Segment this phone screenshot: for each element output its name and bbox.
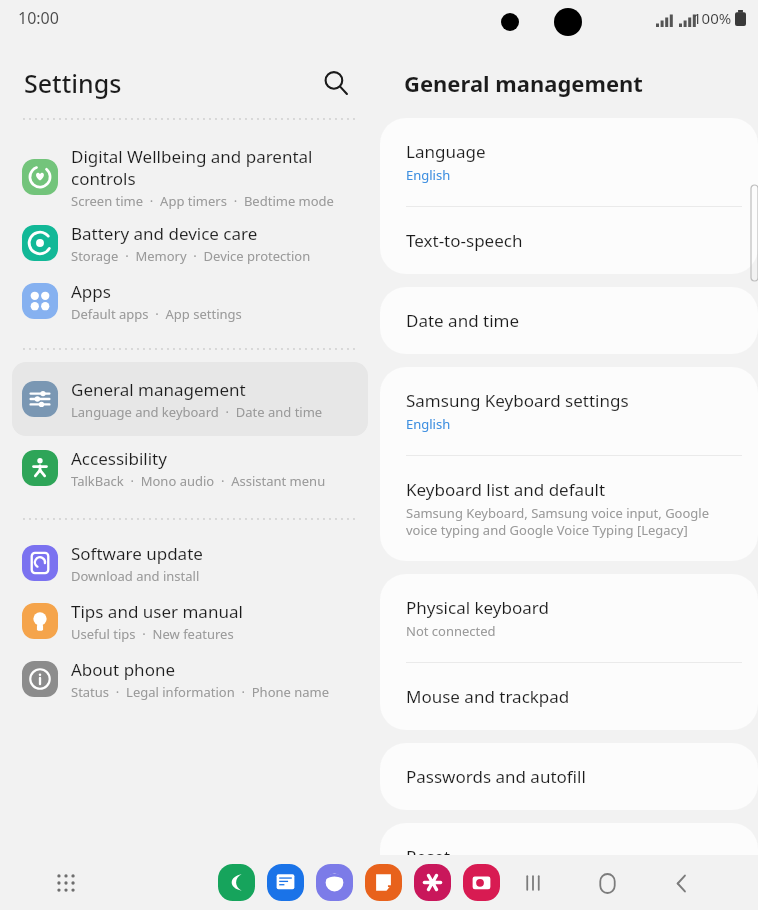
button[interactable]: Internet [316,864,353,901]
staticText: Physical keyboard [406,596,549,619]
button[interactable]: Digital Wellbeing and parental controls [0,140,380,214]
button[interactable]: Text-to-speech [380,207,758,274]
button[interactable]: All apps [46,863,86,903]
staticText: Not connected [406,622,496,640]
staticText: Tips and user manual [71,600,243,623]
staticText: Accessibility [71,447,167,470]
button[interactable]: Software update [0,534,380,592]
button[interactable]: General management [12,362,368,436]
button[interactable]: Battery and device care [0,214,380,272]
staticText: Screen time · App timers · Bedtime mode [71,192,334,210]
button[interactable]: Physical keyboard [380,574,758,662]
button[interactable]: About phone [0,650,380,708]
button[interactable]: Search [314,61,358,105]
staticText: English [406,166,451,184]
button[interactable]: Camera [463,864,500,901]
staticText: Storage · Memory · Device protection [71,247,311,265]
staticText: Software update [71,542,203,565]
staticText: Default apps · App settings [71,305,242,323]
button[interactable]: Tips and user manual [0,592,380,650]
staticText: 100% [693,8,732,28]
staticText: Mouse and trackpad [406,685,570,708]
staticText: Digital Wellbeing and parental controls [71,145,313,190]
staticText: Useful tips · New features [71,625,234,643]
button[interactable]: Back [660,862,702,904]
button[interactable]: Home [586,862,628,904]
staticText: General management [71,378,246,401]
button[interactable]: Recents [512,862,554,904]
button[interactable]: Apps [0,272,380,330]
staticText: Passwords and autofill [406,765,586,788]
staticText: English [406,415,451,433]
staticText: TalkBack · Mono audio · Assistant menu [71,472,326,490]
staticText: Date and time [406,309,520,332]
button[interactable]: Phone [218,864,255,901]
button[interactable]: Samsung Keyboard settings [380,367,758,455]
staticText: General management [404,68,643,98]
staticText: About phone [71,658,176,681]
staticText: Samsung Keyboard, Samsung voice input, G… [406,504,710,539]
staticText: Apps [71,280,111,303]
button[interactable]: Accessibility [0,436,380,500]
button[interactable]: Passwords and autofill [380,743,758,810]
staticText: Battery and device care [71,222,258,245]
staticText: Samsung Keyboard settings [406,389,629,412]
staticText: Reset [406,845,451,868]
button[interactable]: Mouse and trackpad [380,663,758,730]
staticText: Language [406,140,486,163]
staticText: Keyboard list and default [406,478,606,501]
staticText: 10:00 [18,7,59,29]
button[interactable]: Date and time [380,287,758,354]
button[interactable]: Messages [267,864,304,901]
staticText: Settings [24,66,122,100]
button[interactable]: Keyboard list and default [380,456,758,561]
staticText: Status · Legal information · Phone name [71,683,330,701]
staticText: Text-to-speech [406,229,523,252]
button[interactable]: Notes [365,864,402,901]
button[interactable]: Language [380,118,758,206]
staticText: Download and install [71,567,200,585]
staticText: Language and keyboard · Date and time [71,403,323,421]
button[interactable]: Reset [380,823,758,890]
button[interactable]: Gallery [414,864,451,901]
